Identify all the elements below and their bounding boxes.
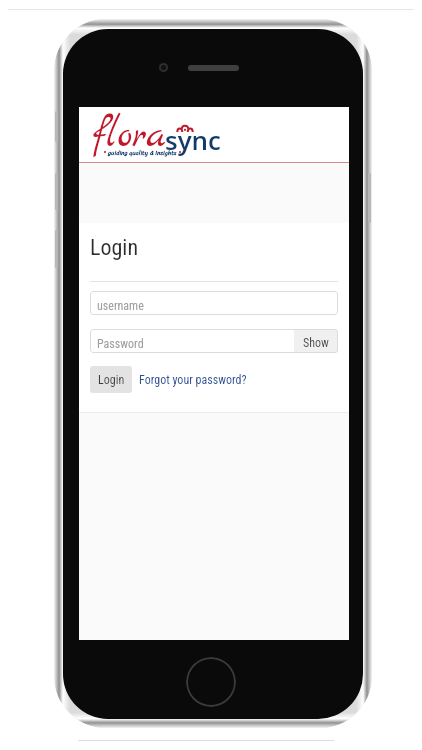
staticText: Login bbox=[90, 235, 139, 261]
button[interactable]: Forgot your password? bbox=[139, 366, 247, 393]
staticText: Password bbox=[97, 337, 144, 351]
button[interactable]: username bbox=[90, 291, 338, 315]
staticText: username bbox=[97, 299, 144, 313]
staticText: flora bbox=[93, 111, 166, 162]
button[interactable]: Password bbox=[90, 329, 294, 353]
staticText: Show bbox=[303, 336, 329, 350]
button[interactable]: Show bbox=[294, 329, 338, 353]
staticText: Login bbox=[98, 373, 125, 387]
button[interactable]: Login bbox=[90, 366, 132, 393]
staticText: Forgot your password? bbox=[139, 373, 247, 387]
staticText: guiding quality & insights bbox=[108, 147, 177, 158]
staticText: sync bbox=[165, 122, 221, 157]
